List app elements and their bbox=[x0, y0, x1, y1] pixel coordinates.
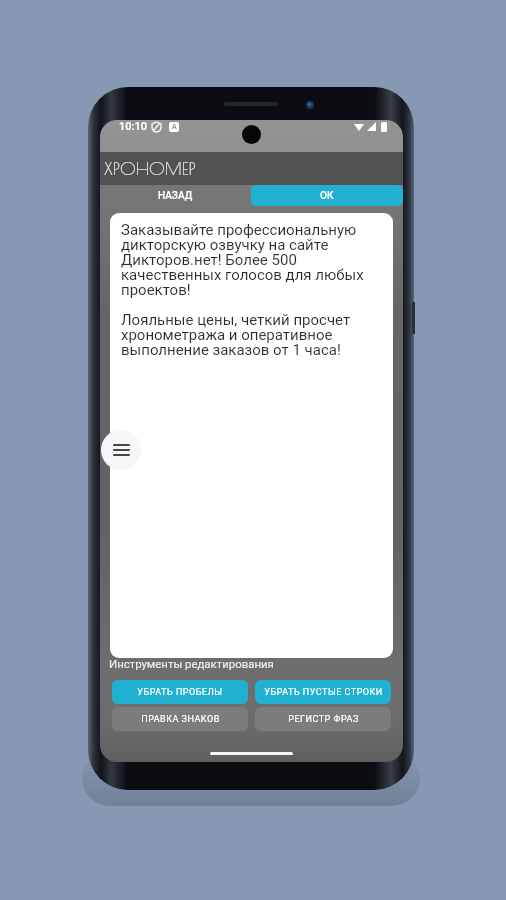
staticText: УБРАТЬ ПУСТЫЕ СТРОКИ bbox=[264, 687, 383, 698]
button[interactable]: НАЗАД bbox=[100, 185, 251, 206]
button[interactable]: Menu bbox=[101, 430, 141, 470]
staticText: Инструменты редактирования bbox=[109, 657, 274, 670]
button[interactable]: ПРАВКА ЗНАКОВ bbox=[112, 707, 248, 731]
staticText: ХРОНОМЕР bbox=[104, 158, 196, 179]
button[interactable]: УБРАТЬ ПУСТЫЕ СТРОКИ bbox=[255, 680, 391, 704]
staticText: ОК bbox=[320, 190, 334, 202]
staticText: 10:10 bbox=[119, 120, 147, 133]
button[interactable]: ОК bbox=[251, 185, 403, 206]
staticText: НАЗАД bbox=[158, 190, 193, 202]
staticText: ПРАВКА ЗНАКОВ bbox=[141, 714, 220, 725]
button[interactable]: РЕГИСТР ФРАЗ bbox=[255, 707, 391, 731]
staticText: УБРАТЬ ПРОБЕЛЫ bbox=[137, 687, 223, 698]
staticText: A bbox=[172, 123, 177, 131]
staticText: РЕГИСТР ФРАЗ bbox=[288, 714, 359, 725]
button[interactable]: УБРАТЬ ПРОБЕЛЫ bbox=[112, 680, 248, 704]
staticText: Заказывайте профессиональную дикторскую … bbox=[121, 221, 388, 359]
